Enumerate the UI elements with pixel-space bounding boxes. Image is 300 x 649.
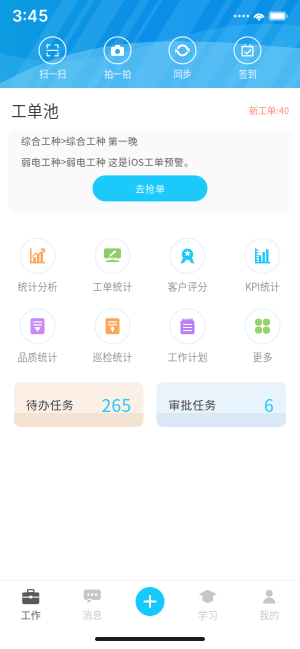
staticText: 学习 [198, 608, 218, 622]
button[interactable]: 工单统计 [75, 238, 150, 294]
staticText: 我的 [259, 608, 279, 622]
button[interactable]: 品质统计 [0, 309, 75, 364]
button[interactable]: 待办任务 [14, 382, 143, 427]
button[interactable]: 拍一拍 [85, 37, 150, 80]
button[interactable]: 巡检统计 [75, 309, 150, 364]
button[interactable]: 工作 [0, 589, 61, 622]
button[interactable]: KPI统计 [225, 238, 300, 294]
button[interactable]: 学习 [177, 589, 238, 622]
staticText: 265 [101, 392, 131, 417]
staticText: 弱电工种>弱电工种 这是iOS工单预警。 [21, 154, 194, 168]
staticText: 消息 [82, 608, 102, 622]
button[interactable]: 统计分析 [0, 238, 75, 294]
staticText: 6 [264, 392, 274, 417]
staticText: 拍一拍 [104, 67, 131, 80]
button[interactable]: 更多 [225, 309, 300, 364]
staticText: 去抢单 [135, 181, 165, 195]
staticText: 巡检统计 [92, 350, 132, 364]
button[interactable]: Add [135, 587, 164, 616]
staticText: 客户评分 [167, 279, 207, 294]
staticText: 工作计划 [167, 350, 207, 364]
button[interactable]: 去抢单 [92, 175, 207, 201]
staticText: KPI统计 [245, 279, 280, 294]
button[interactable]: 工作计划 [150, 309, 225, 364]
button[interactable]: 同步 [150, 37, 215, 80]
staticText: 工作 [21, 608, 41, 622]
staticText: 品质统计 [17, 350, 57, 364]
button[interactable]: 签到 [215, 37, 280, 80]
staticText: 签到 [238, 67, 256, 80]
staticText: 扫一扫 [39, 67, 66, 80]
staticText: 待办任务 [26, 396, 74, 413]
staticText: 统计分析 [17, 279, 57, 294]
staticText: 工单池 [11, 99, 59, 122]
staticText: 综合工种>综合工种 第一晚 [21, 134, 138, 147]
button[interactable]: 消息 [61, 589, 123, 622]
staticText: 工单统计 [92, 279, 132, 294]
button[interactable]: 扫一扫 [20, 37, 85, 80]
button[interactable]: 客户评分 [150, 238, 225, 294]
staticText: 同步 [173, 67, 191, 80]
button[interactable]: 审批任务 [156, 382, 286, 427]
staticText: 3:45 [12, 6, 48, 26]
button[interactable]: 我的 [238, 589, 300, 622]
staticText: 新工单:40 [249, 104, 289, 117]
staticText: 审批任务 [168, 396, 216, 413]
staticText: 更多 [252, 350, 272, 364]
